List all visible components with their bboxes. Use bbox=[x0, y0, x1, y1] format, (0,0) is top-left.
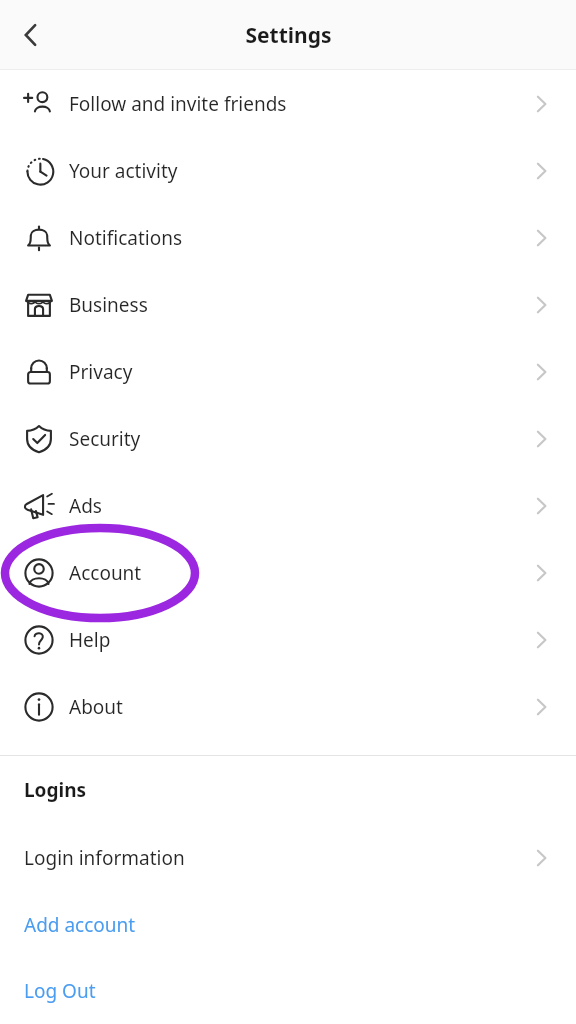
button[interactable]: Login information bbox=[0, 824, 576, 891]
staticText: Account bbox=[69, 560, 142, 586]
staticText: Add account bbox=[24, 912, 136, 938]
staticText: Help bbox=[69, 627, 111, 653]
button[interactable]: About bbox=[0, 673, 576, 740]
button[interactable]: Business bbox=[0, 271, 576, 338]
button[interactable]: Add account bbox=[0, 891, 576, 958]
staticText: Follow and invite friends bbox=[69, 91, 287, 117]
button[interactable]: Security bbox=[0, 405, 576, 472]
button[interactable]: Notifications bbox=[0, 204, 576, 271]
staticText: Privacy bbox=[69, 359, 133, 385]
button[interactable]: Ads bbox=[0, 472, 576, 539]
button[interactable]: Privacy bbox=[0, 338, 576, 405]
staticText: Log Out bbox=[24, 978, 96, 1004]
button[interactable]: Help bbox=[0, 606, 576, 673]
staticText: Settings bbox=[245, 21, 332, 50]
button[interactable]: Follow and invite friends bbox=[0, 70, 576, 137]
staticText: Security bbox=[69, 426, 141, 452]
staticText: Your activity bbox=[69, 158, 178, 184]
button[interactable]: Your activity bbox=[0, 137, 576, 204]
staticText: Login information bbox=[24, 845, 185, 871]
staticText: Business bbox=[69, 292, 148, 318]
button[interactable]: Log Out bbox=[0, 958, 576, 1024]
staticText: About bbox=[69, 694, 123, 720]
button[interactable]: Account bbox=[0, 539, 576, 606]
staticText: Logins bbox=[24, 777, 87, 803]
staticText: Ads bbox=[69, 493, 102, 519]
button[interactable]: Back bbox=[0, 4, 62, 66]
staticText: Notifications bbox=[69, 225, 183, 251]
